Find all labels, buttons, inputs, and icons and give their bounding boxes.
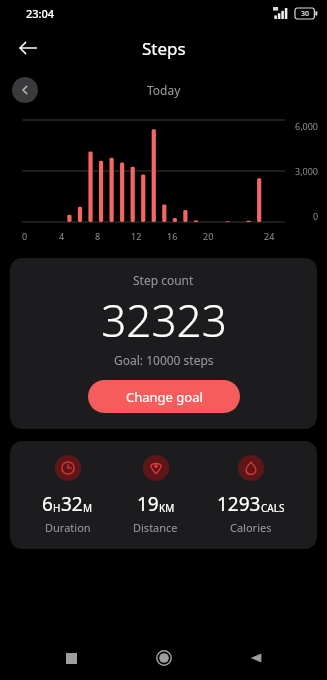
staticText: 3,000 xyxy=(295,165,319,177)
button[interactable]: 19 xyxy=(125,455,186,535)
staticText: M xyxy=(83,501,93,515)
staticText: 32 xyxy=(61,491,83,517)
staticText: 30 xyxy=(301,9,310,19)
staticText: CALS xyxy=(261,501,285,515)
staticText: Duration xyxy=(45,520,91,535)
staticText: KM xyxy=(159,501,175,515)
button[interactable]: Change goal xyxy=(88,380,240,413)
staticText: 8 xyxy=(95,230,101,242)
staticText: 0 xyxy=(313,210,319,222)
staticText: 4 xyxy=(59,230,65,242)
staticText: Step count xyxy=(133,272,194,288)
staticText: 20 xyxy=(203,230,214,242)
button[interactable]: 6 xyxy=(34,455,101,535)
button[interactable]: Previous day xyxy=(12,77,38,103)
staticText: 1293 xyxy=(217,491,261,517)
staticText: 19 xyxy=(137,491,159,517)
staticText: Calories xyxy=(230,520,272,535)
staticText: Steps xyxy=(142,37,186,60)
staticText: 12 xyxy=(131,230,142,242)
button[interactable]: 1293 xyxy=(209,455,293,535)
staticText: 24 xyxy=(264,230,275,242)
button[interactable]: Back xyxy=(8,28,48,68)
staticText: 6 xyxy=(42,491,53,517)
staticText: Distance xyxy=(133,520,178,535)
button[interactable]: Home xyxy=(142,636,186,680)
staticText: Change goal xyxy=(126,388,203,406)
staticText: 16 xyxy=(167,230,178,242)
staticText: 0 xyxy=(22,230,28,242)
staticText: 23:04 xyxy=(26,6,55,21)
staticText: H xyxy=(53,501,61,515)
staticText: Goal: 10000 steps xyxy=(114,352,214,368)
button[interactable]: Recent apps xyxy=(49,636,93,680)
staticText: Today xyxy=(147,82,181,98)
staticText: 32323 xyxy=(101,290,227,350)
button[interactable]: Back xyxy=(234,636,278,680)
staticText: 6,000 xyxy=(295,120,319,132)
